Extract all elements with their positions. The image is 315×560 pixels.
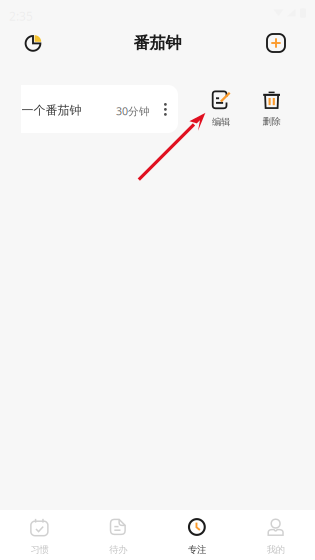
- button[interactable]: 统计: [12, 22, 56, 64]
- button[interactable]: 专注: [157, 510, 236, 560]
- staticText: 我的: [267, 544, 285, 555]
- staticText: 待办: [109, 544, 127, 555]
- staticText: 番茄钟: [133, 33, 181, 53]
- button[interactable]: 新增: [254, 22, 298, 64]
- staticText: 编辑: [212, 116, 230, 128]
- button[interactable]: 删除: [248, 89, 294, 129]
- button[interactable]: 我的: [236, 510, 315, 560]
- staticText: 一个番茄钟: [21, 103, 81, 118]
- button[interactable]: 习惯: [0, 510, 79, 560]
- staticText: 习惯: [30, 544, 48, 555]
- staticText: 30分钟: [116, 104, 150, 118]
- button[interactable]: 编辑: [198, 89, 244, 129]
- staticText: 专注: [188, 544, 206, 555]
- button[interactable]: 待办: [79, 510, 158, 560]
- staticText: 删除: [262, 116, 280, 127]
